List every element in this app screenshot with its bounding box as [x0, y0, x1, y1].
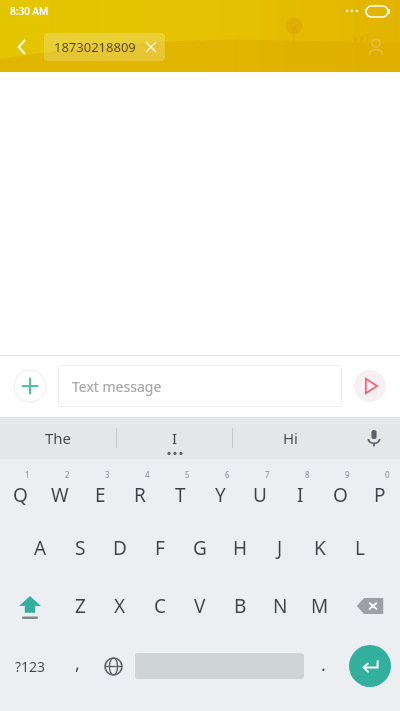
staticText: 9	[345, 469, 350, 480]
staticText: X	[114, 593, 126, 619]
staticText: .	[321, 652, 326, 677]
staticText: 6	[225, 469, 230, 480]
staticText: D	[113, 535, 127, 561]
button[interactable]: 1	[0, 465, 40, 519]
staticText: 7	[265, 469, 270, 480]
button[interactable]: N	[260, 577, 300, 635]
staticText: A	[34, 535, 47, 561]
staticText: 1	[25, 469, 30, 480]
button[interactable]: Contacts	[352, 23, 400, 71]
staticText: 18730218809	[54, 38, 136, 56]
staticText: H	[233, 535, 248, 561]
staticText: O	[333, 482, 348, 508]
button[interactable]: 8	[280, 465, 320, 519]
staticText: 2	[65, 469, 70, 480]
staticText: 5	[185, 469, 190, 480]
staticText: 3	[105, 469, 110, 480]
button[interactable]: I	[117, 417, 232, 459]
button[interactable]: 7	[240, 465, 280, 519]
button[interactable]: B	[220, 577, 260, 635]
button[interactable]: 3	[80, 465, 120, 519]
button[interactable]: A	[20, 519, 60, 577]
staticText: K	[314, 535, 326, 561]
button[interactable]: 6	[200, 465, 240, 519]
button[interactable]: J	[260, 519, 300, 577]
staticText: ,	[75, 651, 80, 676]
staticText: S	[75, 535, 86, 561]
staticText: ?123	[15, 657, 46, 676]
staticText: T	[175, 482, 186, 508]
button[interactable]: 2	[40, 465, 80, 519]
staticText: G	[193, 535, 207, 561]
staticText: U	[253, 482, 267, 508]
button[interactable]: 0	[360, 465, 400, 519]
button[interactable]: Send	[350, 366, 390, 406]
staticText: Text message	[72, 377, 162, 396]
staticText: W	[51, 482, 69, 508]
other: Remove	[144, 40, 158, 54]
button[interactable]: ,	[60, 635, 94, 697]
button[interactable]: Text message	[58, 365, 342, 407]
button[interactable]: M	[300, 577, 340, 635]
staticText: C	[154, 593, 167, 619]
button[interactable]: The	[0, 417, 116, 459]
button[interactable]: ?123	[0, 635, 60, 697]
button[interactable]: H	[220, 519, 260, 577]
staticText: Hi	[283, 428, 298, 448]
button[interactable]: G	[180, 519, 220, 577]
staticText: 0	[385, 469, 390, 480]
staticText: Q	[13, 482, 28, 508]
button[interactable]: Voice input	[348, 417, 400, 459]
staticText: 4	[145, 469, 150, 480]
button[interactable]: 18730218809	[44, 33, 165, 61]
staticText: The	[45, 428, 72, 448]
staticText: Z	[75, 593, 86, 619]
staticText: 8:30 AM	[10, 4, 49, 18]
button[interactable]: F	[140, 519, 180, 577]
staticText: 8	[305, 469, 310, 480]
button[interactable]: .	[306, 635, 340, 697]
button[interactable]: D	[100, 519, 140, 577]
button[interactable]: Add attachment	[10, 366, 50, 406]
staticText: P	[374, 482, 386, 508]
button[interactable]: 5	[160, 465, 200, 519]
button[interactable]: C	[140, 577, 180, 635]
button[interactable]: 9	[320, 465, 360, 519]
staticText: L	[355, 535, 365, 561]
button[interactable]: X	[100, 577, 140, 635]
button[interactable]: S	[60, 519, 100, 577]
staticText: F	[155, 535, 165, 561]
staticText: Y	[215, 482, 226, 508]
staticText: B	[234, 593, 247, 619]
button[interactable]: V	[180, 577, 220, 635]
staticText: I	[172, 428, 178, 448]
button[interactable]: Hi	[233, 417, 348, 459]
button[interactable]: Shift	[0, 577, 60, 635]
button[interactable]: Space	[132, 635, 306, 697]
button[interactable]: 4	[120, 465, 160, 519]
button[interactable]: Backspace	[340, 577, 400, 635]
staticText: R	[134, 482, 146, 508]
staticText: E	[95, 482, 106, 508]
staticText: I	[297, 482, 304, 508]
staticText: M	[311, 593, 329, 619]
staticText: V	[194, 593, 206, 619]
button[interactable]: K	[300, 519, 340, 577]
button[interactable]: Change language	[94, 635, 132, 697]
staticText: J	[277, 535, 283, 561]
staticText: N	[273, 593, 288, 619]
button[interactable]: L	[340, 519, 380, 577]
button[interactable]: Enter	[340, 635, 400, 697]
button[interactable]: Back	[0, 25, 44, 69]
button[interactable]: Z	[60, 577, 100, 635]
